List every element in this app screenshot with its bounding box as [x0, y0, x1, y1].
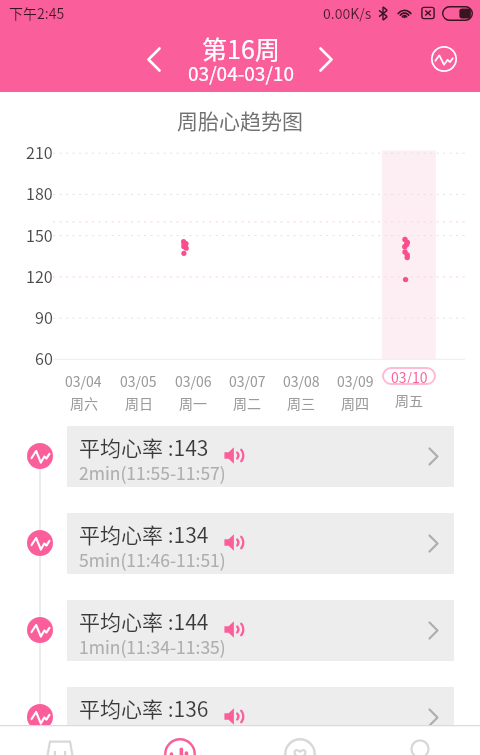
- staticText: 1min(11:34-11:35): [79, 634, 226, 659]
- button[interactable]: 平均心率 :143: [67, 426, 454, 487]
- staticText: 周六: [70, 393, 98, 413]
- staticText: 5min(11:46-11:51): [79, 547, 226, 572]
- staticText: 周日: [125, 393, 153, 413]
- staticText: 平均心率 :144: [79, 606, 209, 636]
- staticText: 2min(11:55-11:57): [79, 460, 226, 485]
- staticText: 周五: [395, 390, 423, 410]
- button[interactable]: Previous week: [132, 37, 176, 81]
- staticText: 周二: [233, 393, 261, 413]
- staticText: 180: [26, 181, 53, 203]
- staticText: 03/06: [175, 371, 212, 391]
- staticText: 第16周: [202, 30, 280, 66]
- staticText: 周一: [179, 393, 207, 413]
- staticText: 03/05: [120, 371, 157, 391]
- button[interactable]: Home: [0, 725, 120, 755]
- staticText: 平均心率 :143: [79, 432, 209, 462]
- staticText: 03/08: [283, 371, 320, 391]
- staticText: 03/09: [337, 371, 374, 391]
- staticText: 周三: [287, 393, 315, 413]
- staticText: 03/10: [391, 367, 428, 385]
- staticText: 03/04: [65, 371, 102, 391]
- staticText: 2min(11:31-11:33): [79, 721, 226, 746]
- button[interactable]: Health: [240, 725, 360, 755]
- staticText: 0.00K/s: [323, 3, 372, 23]
- staticText: 150: [26, 223, 53, 245]
- button[interactable]: 第16周: [169, 30, 313, 94]
- button[interactable]: Records: [120, 725, 240, 755]
- button[interactable]: Next week: [304, 37, 348, 81]
- button[interactable]: 平均心率 :144: [67, 600, 454, 661]
- button[interactable]: Start fetal heart monitoring: [424, 39, 464, 79]
- button[interactable]: 平均心率 :136: [67, 687, 454, 748]
- staticText: 周胎心趋势图: [177, 105, 303, 135]
- staticText: 下午2:45: [9, 3, 65, 23]
- staticText: 90: [35, 305, 53, 327]
- staticText: 平均心率 :134: [79, 519, 209, 549]
- staticText: 120: [26, 264, 53, 286]
- button[interactable]: Profile: [360, 725, 480, 755]
- staticText: 03/04-03/10: [188, 59, 294, 87]
- staticText: 周四: [341, 393, 369, 413]
- staticText: 平均心率 :136: [79, 693, 209, 723]
- button[interactable]: 平均心率 :134: [67, 513, 454, 574]
- staticText: 03/07: [229, 371, 266, 391]
- staticText: 210: [26, 140, 53, 162]
- staticText: 60: [35, 346, 53, 368]
